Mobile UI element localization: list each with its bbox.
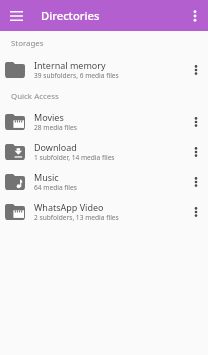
button[interactable]: More options for Music — [185, 171, 207, 193]
button[interactable]: Movies — [0, 107, 208, 137]
staticText: Music — [34, 171, 59, 183]
button[interactable]: More options for Download — [185, 141, 207, 163]
staticText: Directories — [41, 8, 100, 23]
button[interactable]: WhatsApp Video — [0, 197, 208, 227]
staticText: Quick Access — [11, 91, 59, 102]
staticText: 39 subfolders, 6 media files — [34, 71, 119, 80]
button[interactable]: More options — [183, 4, 207, 28]
staticText: 28 media files — [34, 123, 77, 132]
button[interactable]: Music — [0, 167, 208, 197]
button[interactable]: Download — [0, 137, 208, 167]
button[interactable]: More options for WhatsApp Video — [185, 201, 207, 223]
button[interactable]: More options for Movies — [185, 111, 207, 133]
staticText: 1 subfolder, 14 media files — [34, 153, 115, 162]
staticText: Download — [34, 141, 77, 153]
staticText: Internal memory — [34, 59, 106, 71]
button[interactable]: Open navigation drawer — [4, 4, 28, 28]
staticText: 2 subfolders, 13 media files — [34, 213, 119, 222]
staticText: Storages — [11, 38, 44, 49]
staticText: 64 media files — [34, 183, 77, 192]
button[interactable]: Internal memory — [0, 55, 208, 85]
staticText: Movies — [34, 111, 64, 123]
staticText: WhatsApp Video — [34, 201, 104, 213]
button[interactable]: More options for Internal memory — [185, 59, 207, 81]
